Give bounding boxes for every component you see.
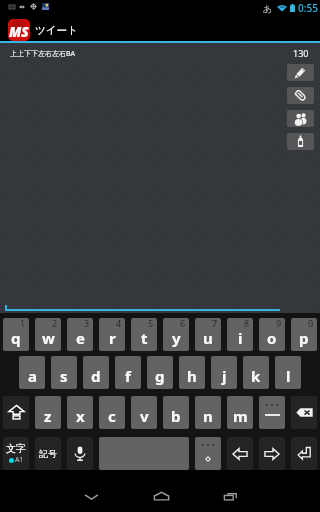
button[interactable]: n [195,396,221,429]
staticText: h [187,366,197,386]
button[interactable]: h [179,356,205,389]
button[interactable]: g [147,356,173,389]
staticText: e [76,328,85,348]
staticText: 9 [276,318,282,329]
button[interactable]: Edit [287,64,314,81]
button[interactable]: shift [3,396,29,429]
staticText: j [222,366,227,386]
staticText: u [203,328,213,348]
staticText: a [28,366,37,386]
staticText: f [125,366,131,386]
button[interactable]: u [195,318,221,351]
staticText: x [76,406,85,426]
button[interactable]: e [67,318,93,351]
staticText: ツイート [35,24,78,37]
staticText: y [172,328,181,348]
button[interactable]: q [3,318,29,351]
staticText: 文字 [6,442,26,455]
staticText: 5 [148,318,154,329]
button[interactable]: backspace [291,396,317,429]
button[interactable]: App icon [8,19,30,41]
button[interactable]: k [243,356,269,389]
button[interactable]: a [19,356,45,389]
button[interactable]: right [259,437,285,470]
staticText: i [238,328,243,348]
staticText: 130 [293,47,309,59]
staticText: c [108,406,116,426]
staticText: 6 [180,318,186,329]
button[interactable]: c [99,396,125,429]
button[interactable]: l [275,356,301,389]
button[interactable]: kigou [35,437,61,470]
staticText: 0:55 [298,1,318,15]
staticText: あ [263,3,273,14]
button[interactable]: f [115,356,141,389]
staticText: 7 [212,318,218,329]
staticText: MS [9,23,29,41]
staticText: v [140,406,149,426]
staticText: A1 [15,455,24,465]
staticText: p [299,328,309,348]
staticText: 8 [244,318,250,329]
staticText: q [11,328,21,348]
staticText: b [171,406,181,426]
staticText: k [251,366,261,386]
staticText: z [44,406,52,426]
staticText: 2 [52,318,58,329]
button[interactable]: i [227,318,253,351]
button[interactable]: moji [3,437,29,470]
button[interactable]: Hide keyboard [74,481,108,511]
button[interactable]: r [99,318,125,351]
staticText: g [155,366,165,386]
staticText: 1 [20,318,26,329]
button[interactable]: o [259,318,285,351]
button[interactable]: x [67,396,93,429]
button[interactable]: Delete [287,133,314,150]
button[interactable]: j [211,356,237,389]
button[interactable]: Recents [213,481,247,511]
button[interactable]: v [131,396,157,429]
staticText: 0 [308,318,314,329]
staticText: l [286,366,291,386]
staticText: 4 [116,318,122,329]
staticText: o [267,328,277,348]
staticText: 3 [84,318,90,329]
button[interactable]: z [35,396,61,429]
staticText: s [60,366,68,386]
button[interactable]: dots [195,437,221,470]
button[interactable]: p [291,318,317,351]
button[interactable]: Home [144,481,178,511]
button[interactable]: t [131,318,157,351]
button[interactable]: mic [67,437,93,470]
button[interactable]: w [35,318,61,351]
staticText: r [109,328,116,348]
button[interactable]: s [51,356,77,389]
staticText: t [141,328,148,348]
button[interactable]: left [227,437,253,470]
staticText: 記号 [39,448,57,459]
button[interactable]: b [163,396,189,429]
button[interactable]: m [227,396,253,429]
button[interactable]: d [83,356,109,389]
staticText: m [233,406,248,426]
staticText: w [42,328,55,348]
staticText: 上上下下左右左右BA [10,49,76,59]
button[interactable]: y [163,318,189,351]
button[interactable]: enter [291,437,317,470]
staticText: n [203,406,213,426]
button[interactable]: Attach [287,87,314,104]
button[interactable]: dash [259,396,285,429]
staticText: d [91,366,101,386]
button[interactable]: Contacts [287,110,314,127]
